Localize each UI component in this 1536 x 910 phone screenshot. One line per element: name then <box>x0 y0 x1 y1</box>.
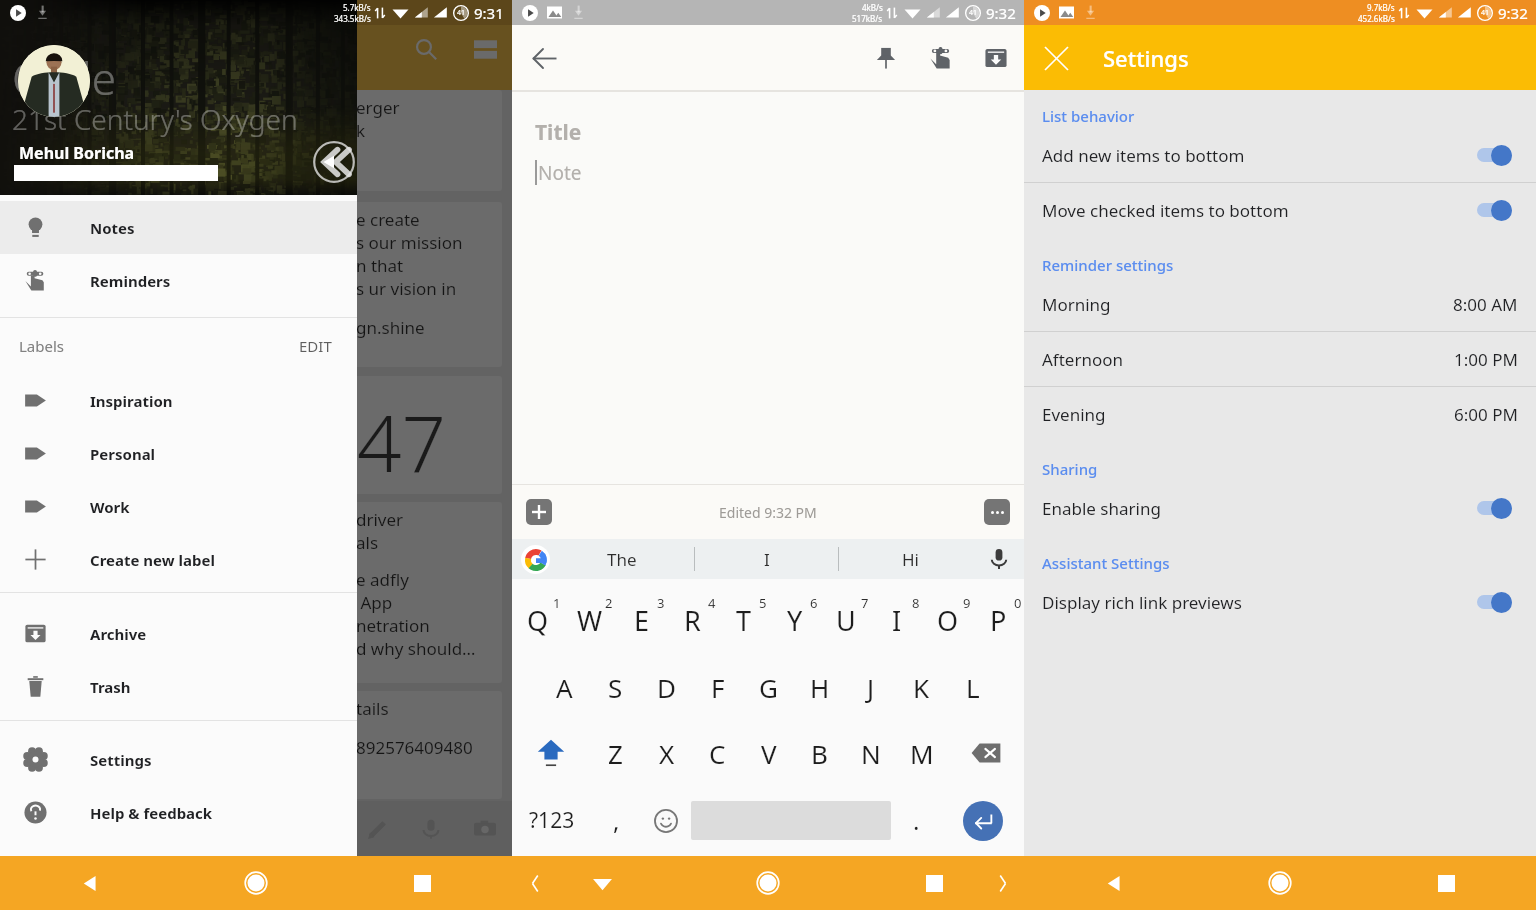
button[interactable]: Reminders <box>0 254 357 307</box>
button[interactable]: Z <box>590 721 641 785</box>
staticText: Inspiration <box>90 391 173 411</box>
button[interactable]: ?123 <box>512 785 591 856</box>
staticText: k <box>356 119 366 142</box>
button[interactable]: Remind me <box>917 34 965 82</box>
button[interactable]: Notes <box>0 201 357 254</box>
staticText: G <box>759 670 778 705</box>
staticText: V <box>761 736 777 771</box>
staticText: Evening <box>1042 403 1106 426</box>
button[interactable]: Home <box>234 861 278 905</box>
staticText: s ur vision in <box>356 277 457 300</box>
button[interactable]: Voice input <box>982 542 1016 576</box>
staticText: List behavior <box>1042 106 1135 126</box>
button[interactable]: N <box>845 721 896 785</box>
staticText: Labels <box>19 336 65 356</box>
button[interactable]: Afternoon <box>1024 332 1536 386</box>
staticText: Hi <box>902 548 919 571</box>
staticText: Title <box>535 118 582 147</box>
staticText: 21st Century's Oxygen <box>12 100 298 138</box>
button[interactable]: 0 <box>973 579 1024 653</box>
button[interactable]: Enable sharing <box>1024 481 1536 535</box>
button[interactable]: , <box>591 785 641 856</box>
button[interactable]: F <box>692 653 743 721</box>
button[interactable]: 9 <box>922 579 973 653</box>
button[interactable]: Collapse <box>312 140 356 184</box>
button[interactable]: Search <box>402 25 450 73</box>
staticText: Y <box>787 602 803 639</box>
button[interactable]: . <box>891 785 941 856</box>
button[interactable]: Help & feedback <box>0 786 357 839</box>
button[interactable]: Back <box>68 861 112 905</box>
staticText: Mehul Boricha <box>19 142 135 164</box>
button[interactable]: Inspiration <box>0 374 357 427</box>
staticText: Display rich link previews <box>1042 591 1242 614</box>
button[interactable]: Pin <box>862 34 910 82</box>
button[interactable]: X <box>641 721 692 785</box>
button[interactable]: Back <box>580 861 624 905</box>
button[interactable]: Settings <box>0 733 357 786</box>
button[interactable]: Trash <box>0 660 357 713</box>
button[interactable]: 2 <box>564 579 616 653</box>
button[interactable]: Recents <box>912 861 956 905</box>
staticText: U <box>836 602 856 639</box>
button[interactable]: Archive <box>0 607 357 660</box>
button[interactable]: Enter <box>941 785 1024 856</box>
staticText: 4 <box>708 594 716 612</box>
staticText: 41 <box>969 8 978 18</box>
button[interactable]: Emoji <box>641 785 691 856</box>
staticText: Reminders <box>90 271 171 291</box>
staticText: M <box>910 736 934 771</box>
button[interactable]: 4 <box>667 579 718 653</box>
button[interactable]: Add <box>526 499 552 525</box>
button[interactable]: 3 <box>616 579 667 653</box>
button[interactable]: Google <box>521 545 550 574</box>
button[interactable]: 7 <box>820 579 871 653</box>
button[interactable]: J <box>845 653 896 721</box>
button[interactable]: EDIT <box>299 336 332 356</box>
button[interactable]: Evening <box>1024 387 1536 441</box>
button[interactable]: Display rich link previews <box>1024 575 1536 629</box>
button[interactable]: Backspace <box>947 721 1024 785</box>
button[interactable]: Home <box>1258 861 1302 905</box>
staticText: Work <box>90 497 130 517</box>
staticText: E <box>634 602 650 639</box>
button[interactable]: More options <box>984 499 1010 525</box>
button[interactable]: Close <box>1032 34 1080 82</box>
button[interactable]: Recents <box>400 861 444 905</box>
button[interactable]: Recents <box>1424 861 1468 905</box>
button[interactable]: Create new label <box>0 533 357 586</box>
button[interactable]: View options <box>461 25 509 73</box>
button[interactable]: Home <box>746 861 790 905</box>
button[interactable]: 6 <box>769 579 820 653</box>
button[interactable]: Archive <box>972 34 1020 82</box>
button[interactable]: Previous <box>518 866 552 900</box>
button[interactable]: Back <box>520 34 568 82</box>
button[interactable]: G <box>743 653 794 721</box>
button[interactable]: Add new items to bottom <box>1024 128 1536 182</box>
button[interactable]: D <box>641 653 692 721</box>
staticText: P <box>990 602 1007 639</box>
button[interactable]: S <box>590 653 641 721</box>
button[interactable]: 8 <box>871 579 922 653</box>
button[interactable]: V <box>743 721 794 785</box>
button[interactable]: Personal <box>0 427 357 480</box>
button[interactable]: K <box>896 653 947 721</box>
button[interactable]: 1 <box>512 579 564 653</box>
button[interactable]: H <box>794 653 845 721</box>
button[interactable]: Move checked items to bottom <box>1024 183 1536 237</box>
button[interactable]: L <box>947 653 998 721</box>
button[interactable]: A <box>539 653 590 721</box>
staticText: erger <box>356 96 400 119</box>
button[interactable]: Shift <box>512 721 590 785</box>
button[interactable]: C <box>692 721 743 785</box>
button[interactable]: Back <box>1092 861 1136 905</box>
button[interactable]: Morning <box>1024 277 1536 331</box>
button[interactable]: Next <box>985 866 1019 900</box>
button[interactable]: Work <box>0 480 357 533</box>
button[interactable]: 5 <box>718 579 769 653</box>
button[interactable]: M <box>896 721 947 785</box>
staticText: X <box>659 736 675 771</box>
button[interactable]: B <box>794 721 845 785</box>
staticText: R <box>684 602 701 639</box>
